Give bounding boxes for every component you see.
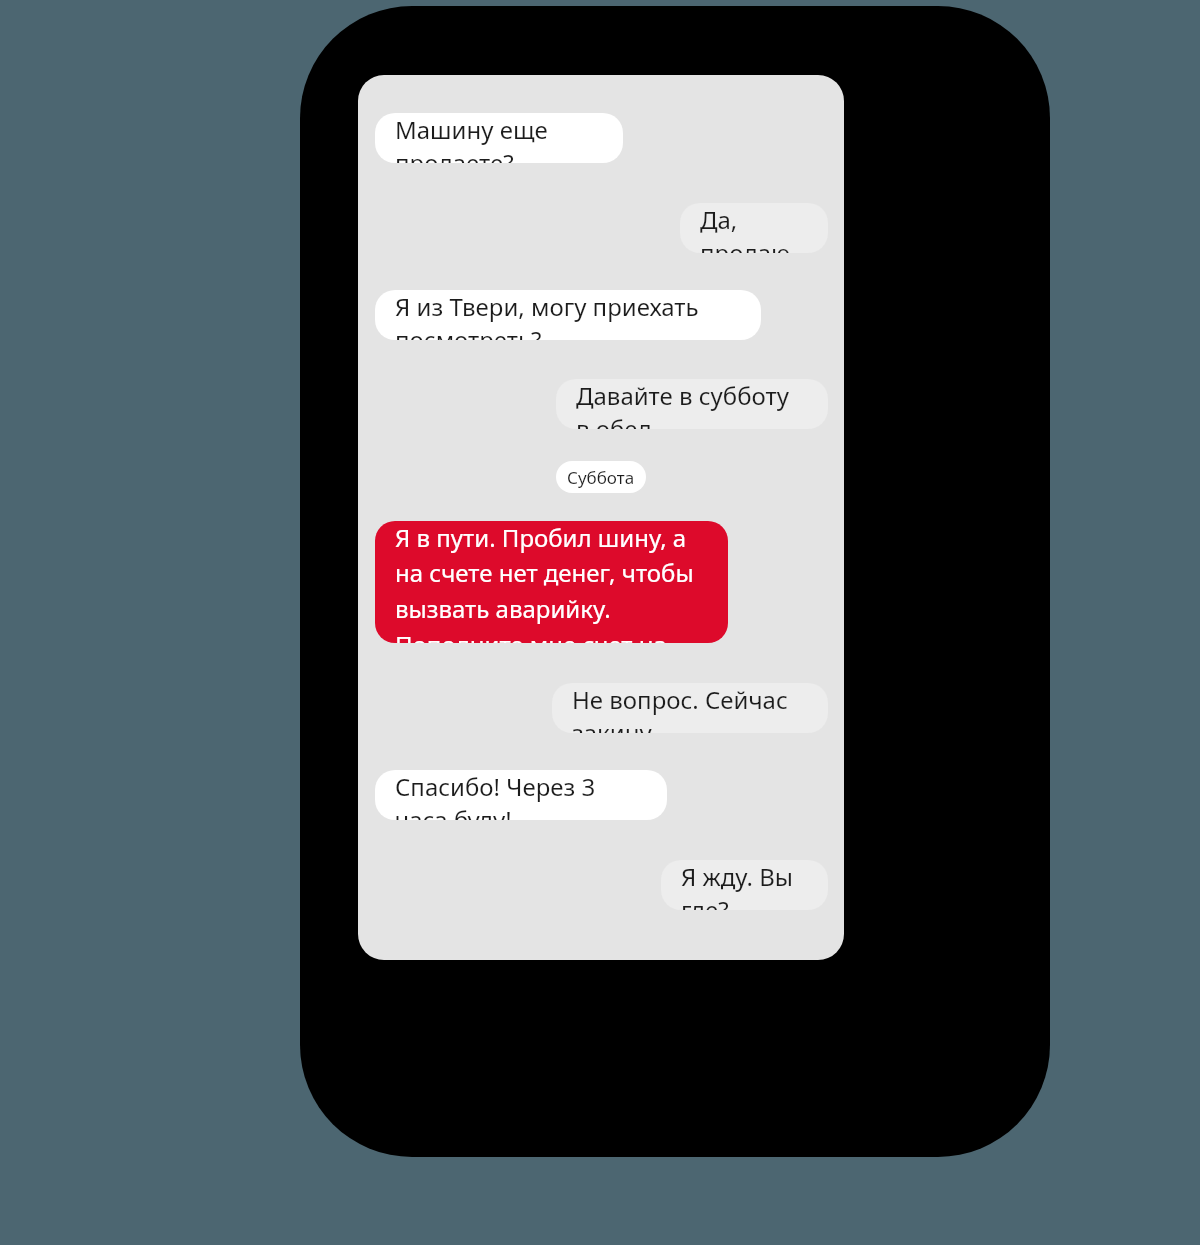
button[interactable]: Я из Твери, могу приехать посмотреть?: [375, 290, 761, 340]
staticText: Спасибо! Через 3 часа буду!: [395, 770, 647, 820]
button[interactable]: Не вопрос. Сейчас закину: [552, 683, 828, 733]
button[interactable]: Суббота: [556, 461, 646, 493]
staticText: Я в пути. Пробил шину, а на счете нет де…: [395, 521, 712, 643]
staticText: Машину еще продаете?: [395, 113, 603, 163]
staticText: Не вопрос. Сейчас закину: [572, 683, 808, 733]
button[interactable]: Спасибо! Через 3 часа буду!: [375, 770, 667, 820]
staticText: Я из Твери, могу приехать посмотреть?: [395, 290, 741, 340]
button[interactable]: Я жду. Вы где?: [661, 860, 828, 910]
staticText: Давайте в субботу в обед: [576, 379, 808, 429]
staticText: Суббота: [567, 466, 635, 489]
button[interactable]: Давайте в субботу в обед: [556, 379, 828, 429]
button[interactable]: Я в пути. Пробил шину, а на счете нет де…: [375, 521, 728, 643]
button[interactable]: Машину еще продаете?: [375, 113, 623, 163]
staticText: Да, продаю: [700, 203, 808, 253]
staticText: Я жду. Вы где?: [681, 860, 808, 910]
button[interactable]: Да, продаю: [680, 203, 828, 253]
